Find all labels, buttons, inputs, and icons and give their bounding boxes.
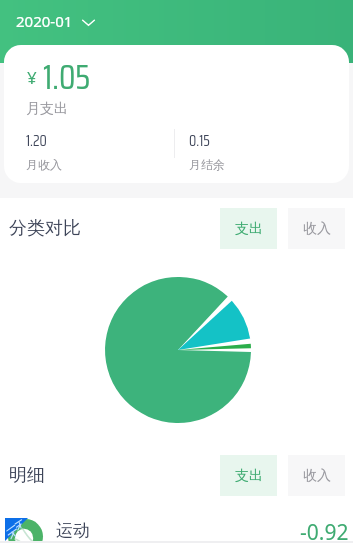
staticText: 月支出 <box>26 100 68 118</box>
staticText: 月结余 <box>189 157 225 172</box>
staticText: ¥ <box>27 66 37 89</box>
staticText: 分类对比 <box>9 217 81 240</box>
staticText: 运动 <box>56 520 90 541</box>
staticText: 支出 <box>235 467 263 485</box>
staticText: 收入 <box>303 220 331 238</box>
button[interactable]: 支出 <box>220 455 277 496</box>
staticText: 0.15 <box>189 129 210 153</box>
button[interactable]: 运动 <box>0 506 353 541</box>
staticText: 1.05 <box>43 50 91 104</box>
staticText: 月收入 <box>26 157 62 172</box>
staticText: 支出 <box>235 220 263 238</box>
staticText: 1.20 <box>26 129 47 153</box>
button[interactable]: 支出 <box>220 208 277 249</box>
button[interactable]: 收入 <box>288 455 345 496</box>
button[interactable]: 收入 <box>288 208 345 249</box>
staticText: 明细 <box>9 464 45 487</box>
staticText: 收入 <box>303 467 331 485</box>
button[interactable]: 2020-01 <box>16 11 95 31</box>
staticText: 2020-01 <box>16 11 73 31</box>
staticText: -0.92 <box>300 518 349 541</box>
